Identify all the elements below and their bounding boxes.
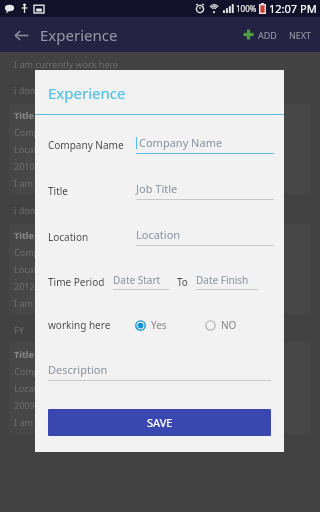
staticText: Location <box>14 143 51 155</box>
staticText: Title <box>14 109 34 121</box>
staticText: NEXT <box>289 29 312 41</box>
staticText: Title <box>14 348 34 360</box>
staticText: Location <box>136 227 181 242</box>
staticText: Job Title <box>136 181 178 196</box>
staticText: working here <box>48 318 111 332</box>
staticText: Location <box>14 382 51 394</box>
staticText: Time Period <box>48 275 105 289</box>
staticText: i don't <box>14 84 41 96</box>
staticText: Location <box>14 263 51 275</box>
button[interactable]: Job Title <box>136 181 274 200</box>
button[interactable]: NEXT <box>287 25 314 45</box>
button[interactable]: Location <box>136 227 274 246</box>
staticText: Company <box>14 126 55 138</box>
button[interactable]: Back <box>6 20 36 50</box>
staticText: I am currently work here <box>14 58 119 70</box>
staticText: SAVE <box>147 415 173 430</box>
staticText: 2012-0 <box>14 280 43 292</box>
staticText: Experience <box>48 83 126 103</box>
staticText: Title <box>48 184 68 198</box>
staticText: To <box>177 275 188 289</box>
staticText: Experience <box>40 25 118 45</box>
staticText: I am cu <box>14 297 46 309</box>
staticText: 100% <box>236 3 257 14</box>
button[interactable]: Date Start <box>113 273 169 290</box>
staticText: ADD <box>258 29 277 41</box>
staticText: Description <box>48 362 108 377</box>
staticText: 12:07 PM <box>269 1 317 16</box>
staticText: I am cu <box>14 177 46 189</box>
button[interactable]: Date Finish <box>196 273 258 290</box>
button[interactable]: SAVE <box>48 409 271 436</box>
staticText: Date Finish <box>196 273 249 287</box>
staticText: i don't <box>14 204 41 216</box>
staticText: I am currently work here <box>14 416 119 428</box>
staticText: Location <box>48 230 89 244</box>
button[interactable]: Company Name <box>136 135 274 154</box>
staticText: Date Start <box>113 273 161 287</box>
staticText: Title <box>14 229 34 241</box>
staticText: 2009-02-11 To 2004-02-11 <box>14 399 123 411</box>
staticText: FY <box>14 324 24 336</box>
staticText: Comp <box>14 365 40 377</box>
staticText: NO <box>221 318 237 332</box>
button[interactable]: NO <box>205 316 237 334</box>
button[interactable]: ADD <box>240 24 279 45</box>
staticText: Company Name <box>48 138 124 152</box>
staticText: Yes <box>151 318 167 332</box>
staticText: 2010-0 <box>14 160 43 172</box>
button[interactable]: Yes <box>135 316 167 334</box>
staticText: Company <box>14 246 55 258</box>
button[interactable]: Description <box>48 362 271 381</box>
staticText: Company Name <box>139 135 223 150</box>
